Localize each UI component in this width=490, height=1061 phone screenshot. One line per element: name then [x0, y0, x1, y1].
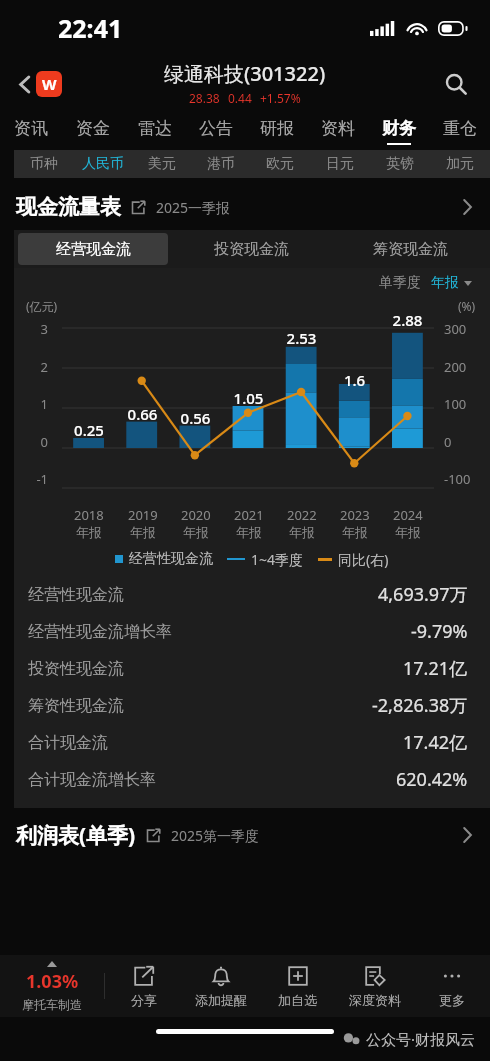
- staticText: 筹资现金流: [373, 240, 448, 259]
- staticText: 分享: [131, 992, 157, 1008]
- staticText: 2025一季报: [156, 198, 231, 217]
- staticText: 年报: [395, 524, 421, 540]
- staticText: 2.88: [381, 310, 434, 330]
- button[interactable]: 深度资料: [336, 955, 413, 1017]
- button[interactable]: 雷达: [124, 112, 185, 150]
- button[interactable]: 资讯: [0, 112, 62, 150]
- button[interactable]: 研报: [246, 112, 307, 150]
- staticText: 利润表(单季): [16, 821, 136, 850]
- staticText: 现金流量表: [16, 194, 121, 220]
- staticText: 17.21亿: [403, 656, 468, 681]
- staticText: +1.57%: [260, 90, 301, 106]
- button[interactable]: 更多: [413, 955, 490, 1017]
- staticText: 资金: [76, 118, 110, 139]
- staticText: -2,826.38万: [372, 693, 468, 718]
- staticText: 2: [26, 358, 48, 376]
- staticText: W: [42, 74, 57, 94]
- staticText: 合计现金流: [28, 733, 108, 753]
- staticText: 日元: [326, 155, 354, 173]
- staticText: 年报: [289, 524, 315, 540]
- staticText: 0.66: [116, 404, 169, 424]
- button[interactable]: 搜索: [436, 64, 476, 104]
- button[interactable]: 筹资性现金流: [14, 687, 490, 724]
- staticText: 年报: [236, 524, 262, 540]
- button[interactable]: 美元: [132, 150, 191, 178]
- button[interactable]: 日元: [310, 150, 370, 178]
- button[interactable]: 经营性现金流增长率: [14, 613, 490, 650]
- button[interactable]: 重仓: [429, 112, 490, 150]
- staticText: 资讯: [14, 118, 48, 139]
- staticText: 摩托车制造: [22, 997, 82, 1012]
- button[interactable]: 合计现金流: [14, 724, 490, 761]
- staticText: 17.42亿: [403, 730, 468, 755]
- button[interactable]: 港币: [191, 150, 250, 178]
- button[interactable]: 经营现金流: [18, 233, 168, 265]
- button[interactable]: 加元: [430, 150, 490, 178]
- staticText: 美元: [148, 155, 176, 173]
- button[interactable]: 加自选: [259, 955, 336, 1017]
- button[interactable]: 分享: [105, 955, 182, 1017]
- button[interactable]: 投资性现金流: [14, 650, 490, 687]
- staticText: 深度资料: [349, 992, 401, 1008]
- button[interactable]: 财务: [368, 112, 429, 150]
- staticText: 1: [26, 395, 48, 413]
- button[interactable]: 年报: [431, 274, 472, 292]
- staticText: 2020: [181, 506, 211, 524]
- staticText: 重仓: [443, 118, 477, 139]
- button[interactable]: 现金流量表: [0, 190, 490, 224]
- button[interactable]: 1.03%: [0, 955, 104, 1017]
- staticText: 欧元: [266, 155, 294, 173]
- staticText: 2018: [74, 506, 104, 524]
- button[interactable]: 筹资现金流: [335, 233, 486, 265]
- button[interactable]: 微博: [36, 71, 62, 97]
- staticText: 经营性现金流: [28, 585, 124, 605]
- staticText: 资料: [321, 118, 355, 139]
- staticText: 300: [444, 320, 482, 338]
- staticText: 620.42%: [396, 767, 468, 792]
- staticText: 年报: [76, 524, 102, 540]
- staticText: 币种: [30, 155, 58, 173]
- staticText: 年报: [183, 524, 209, 540]
- staticText: (%): [458, 298, 476, 314]
- staticText: 港币: [207, 155, 235, 173]
- staticText: 公众号·财报风云: [366, 1029, 476, 1049]
- staticText: 2022: [287, 506, 317, 524]
- button[interactable]: 币种: [14, 150, 73, 178]
- staticText: (亿元): [26, 298, 58, 314]
- button[interactable]: 资金: [62, 112, 124, 150]
- staticText: 0.56: [169, 408, 222, 428]
- staticText: 1~4季度: [251, 550, 304, 569]
- staticText: 年报: [130, 524, 156, 540]
- staticText: 0.44: [228, 90, 252, 106]
- staticText: -1: [26, 470, 48, 488]
- staticText: 雷达: [138, 118, 172, 139]
- staticText: 更多: [439, 992, 465, 1008]
- staticText: 年报: [431, 274, 459, 292]
- staticText: -100: [444, 470, 482, 488]
- staticText: 单季度: [379, 274, 421, 292]
- button[interactable]: 公告: [185, 112, 246, 150]
- button[interactable]: 利润表(单季): [0, 818, 490, 852]
- staticText: 人民币: [82, 155, 124, 173]
- button[interactable]: 经营性现金流: [14, 576, 490, 613]
- staticText: 绿通科技(301322): [164, 60, 326, 87]
- button[interactable]: 投资现金流: [176, 233, 327, 265]
- staticText: 200: [444, 358, 482, 376]
- button[interactable]: 欧元: [250, 150, 310, 178]
- staticText: 添加提醒: [195, 992, 247, 1008]
- staticText: 研报: [260, 118, 294, 139]
- button[interactable]: 返回: [6, 65, 44, 103]
- staticText: 经营性现金流增长率: [28, 622, 172, 642]
- button[interactable]: 人民币: [73, 150, 132, 178]
- button[interactable]: 合计现金流增长率: [14, 761, 490, 798]
- button[interactable]: 单季度: [379, 274, 421, 292]
- staticText: 加元: [446, 155, 474, 173]
- button[interactable]: 资料: [307, 112, 368, 150]
- staticText: 22:41: [58, 11, 123, 45]
- staticText: 投资现金流: [214, 240, 289, 259]
- staticText: 100: [444, 395, 482, 413]
- button[interactable]: 英镑: [370, 150, 430, 178]
- button[interactable]: 添加提醒: [182, 955, 259, 1017]
- staticText: 同比(右): [338, 550, 389, 569]
- staticText: 2023: [340, 506, 370, 524]
